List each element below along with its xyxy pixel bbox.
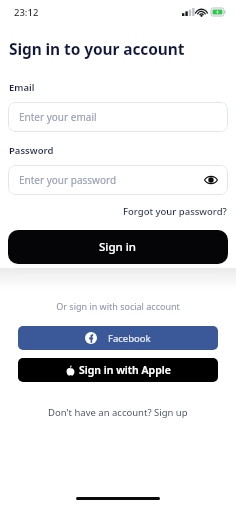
staticText: Don't have an account? Sign up [48,406,188,419]
staticText: Facebook [108,332,151,345]
staticText: Enter your email [19,110,97,124]
staticText: Sign in [99,239,137,255]
button[interactable]: Forgot your password? [123,203,236,220]
button[interactable]: Sign in [8,230,228,264]
staticText: Email [9,81,35,94]
button[interactable]: Enter your password [8,165,228,195]
button[interactable]: Sign in with Apple [18,358,218,382]
staticText: Forgot your password? [123,205,227,218]
button[interactable]: Don't have an account? Sign up [44,402,192,423]
staticText: Sign in with Apple [79,363,171,377]
button[interactable]: Enter your email [8,102,228,132]
button[interactable]: Facebook [18,326,218,350]
staticText: Password [9,144,54,157]
staticText: 23:12 [14,6,39,19]
staticText: Enter your password [19,173,117,187]
staticText: Sign in to your account [9,38,185,59]
staticText: Or sign in with social account [56,300,180,312]
button[interactable]: Show password [202,171,220,189]
